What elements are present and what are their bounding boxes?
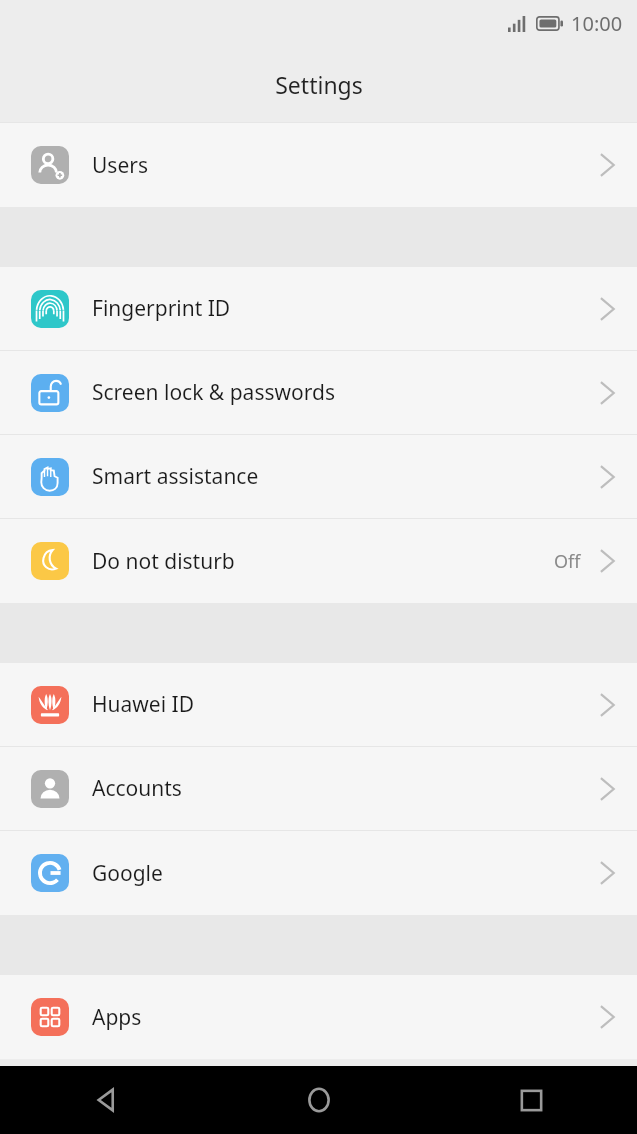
- button[interactable]: Apps: [0, 975, 637, 1059]
- button[interactable]: Recent apps: [425, 1066, 637, 1134]
- button[interactable]: Do not disturb: [0, 519, 637, 603]
- staticText: Google: [92, 859, 599, 888]
- staticText: Fingerprint ID: [92, 294, 599, 323]
- button[interactable]: Home: [213, 1066, 425, 1134]
- staticText: Off: [554, 549, 581, 574]
- staticText: Settings: [275, 69, 363, 100]
- button[interactable]: Huawei ID: [0, 663, 637, 746]
- staticText: Accounts: [92, 774, 599, 803]
- button[interactable]: Fingerprint ID: [0, 267, 637, 350]
- staticText: Smart assistance: [92, 462, 599, 491]
- button[interactable]: Users: [0, 123, 637, 207]
- button[interactable]: Screen lock & passwords: [0, 351, 637, 434]
- button[interactable]: Back: [0, 1066, 213, 1134]
- staticText: Screen lock & passwords: [92, 378, 599, 407]
- button[interactable]: Smart assistance: [0, 435, 637, 518]
- staticText: Huawei ID: [92, 690, 599, 719]
- staticText: Do not disturb: [92, 547, 554, 576]
- staticText: Users: [92, 151, 599, 180]
- staticText: 10:00: [571, 10, 623, 37]
- button[interactable]: Accounts: [0, 747, 637, 830]
- staticText: Apps: [92, 1003, 599, 1032]
- button[interactable]: Google: [0, 831, 637, 915]
